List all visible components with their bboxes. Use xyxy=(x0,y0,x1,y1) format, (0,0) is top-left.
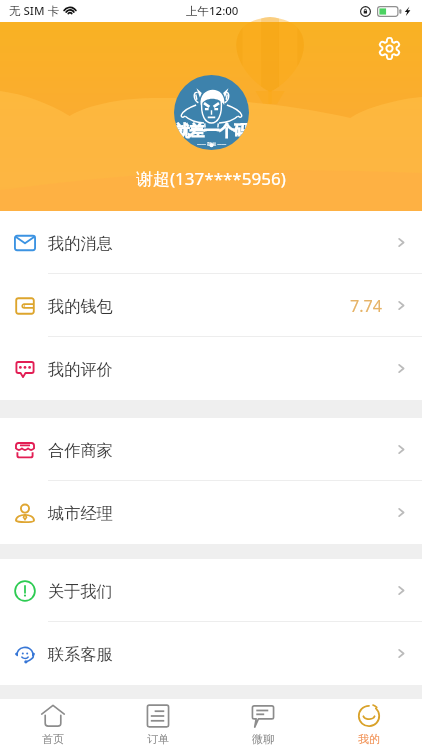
staticText: 订单 xyxy=(147,732,169,746)
staticText: 联系客服 xyxy=(48,644,113,664)
staticText: 就差一个码农 xyxy=(174,121,249,141)
button[interactable]: Avatar xyxy=(174,75,249,150)
staticText: 我的评价 xyxy=(48,359,113,379)
button[interactable]: 城市经理 xyxy=(0,481,422,544)
staticText: 微聊 xyxy=(252,732,274,746)
button[interactable]: 关于我们 xyxy=(0,559,422,622)
staticText: 首页 xyxy=(42,732,64,746)
button[interactable]: 首页 xyxy=(0,699,105,750)
staticText: 上午12:00 xyxy=(186,3,239,19)
button[interactable]: 我的消息 xyxy=(0,211,422,274)
staticText: 关于我们 xyxy=(48,581,113,601)
button[interactable]: 合作商家 xyxy=(0,418,422,481)
staticText: 7.74 xyxy=(350,295,383,317)
staticText: —— 码叔 —— xyxy=(197,141,227,147)
staticText: 城市经理 xyxy=(48,503,113,523)
button[interactable]: Settings xyxy=(374,33,404,63)
button[interactable]: 微聊 xyxy=(210,699,316,750)
staticText: 无 SIM 卡 xyxy=(9,3,59,19)
button[interactable]: 联系客服 xyxy=(0,622,422,685)
staticText: 我的 xyxy=(358,732,380,746)
button[interactable]: 订单 xyxy=(105,699,210,750)
button[interactable]: 我的评价 xyxy=(0,337,422,400)
staticText: 合作商家 xyxy=(48,440,113,460)
button[interactable]: 我的 xyxy=(316,699,422,750)
staticText: 我的钱包 xyxy=(48,296,113,316)
button[interactable]: 我的钱包 xyxy=(0,274,422,337)
staticText: 谢超(137****5956) xyxy=(136,167,286,190)
staticText: 我的消息 xyxy=(48,233,113,253)
